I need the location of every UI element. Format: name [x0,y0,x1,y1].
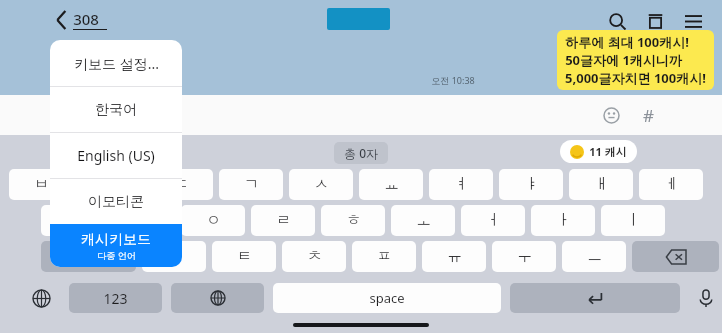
button[interactable]: 11 캐시 [560,140,637,163]
button[interactable]: 키보드 설정... [50,40,182,86]
button[interactable]: ㅂ [9,169,73,200]
button[interactable]: ㅁ [41,205,105,236]
button[interactable]: space [273,283,501,313]
staticText: 오전 10:38 [431,74,475,86]
button[interactable]: Shift [41,241,136,272]
button[interactable]: 총 0자 [334,142,388,164]
staticText: ㅈ [104,175,119,194]
button[interactable]: ㅓ [461,205,525,236]
button[interactable]: ㅈ [79,169,143,200]
staticText: 캐시키보드 [81,231,151,249]
button[interactable]: 123 [69,283,162,313]
button[interactable]: Emoji [596,100,626,130]
staticText: ㅣ [626,211,641,230]
button[interactable]: 이모티콘 [50,179,182,224]
staticText: ㅐ [594,175,609,194]
button[interactable]: ㅜ [492,241,556,272]
staticText: ㅔ [664,175,679,194]
staticText: ㅇ [206,211,221,230]
staticText: 키보드 설정... [74,54,159,73]
button[interactable]: Enter [510,283,680,313]
button[interactable]: Archive [640,6,670,36]
button[interactable]: 308 [52,6,111,33]
staticText: # [643,104,654,127]
button[interactable]: ㅋ [142,241,206,272]
button[interactable]: Menu [678,6,708,36]
staticText: 다중 언어 [97,249,136,261]
button[interactable]: ㅍ [352,241,416,272]
staticText: ㅍ [377,247,392,266]
button[interactable]: Voice input [690,280,722,316]
staticText: ㅡ [587,247,602,266]
button[interactable]: ㅏ [531,205,595,236]
button[interactable]: ㅗ [391,205,455,236]
staticText: ㅛ [384,175,399,194]
staticText: ㅌ [237,247,252,266]
button[interactable]: Hashtag [634,101,662,129]
staticText: 한국어 [95,101,137,119]
staticText: 이모티콘 [88,193,144,211]
staticText: ㄹ [276,211,291,230]
button[interactable]: English (US) [50,133,182,178]
button[interactable]: ㅕ [429,169,493,200]
staticText: ㅕ [454,175,469,194]
staticText: 50글자에 1캐시니까 [565,51,682,69]
staticText: ㅎ [346,211,361,230]
staticText: ㄴ [136,211,151,230]
staticText: ㅗ [416,211,431,230]
staticText: ㅁ [66,211,81,230]
staticText: ㄷ [174,175,189,194]
button[interactable]: ㅑ [499,169,563,200]
button[interactable]: ㅣ [601,205,665,236]
staticText: ㅜ [517,247,532,266]
button[interactable]: ㅊ [282,241,346,272]
button[interactable]: ㅠ [422,241,486,272]
button[interactable]: 한국어 [50,87,182,132]
button[interactable]: ㄹ [251,205,315,236]
button[interactable]: ㄷ [149,169,213,200]
button[interactable]: ㅌ [212,241,276,272]
staticText: ㅓ [486,211,501,230]
button[interactable]: Language [171,283,264,313]
staticText: ㅏ [556,211,571,230]
button[interactable]: Search [602,6,632,36]
button[interactable]: ㄴ [111,205,175,236]
button[interactable]: ㅇ [181,205,245,236]
staticText: ㅠ [447,247,462,266]
button[interactable]: ㅛ [359,169,423,200]
staticText: ㄱ [244,175,259,194]
button[interactable]: 하루에 최대 100캐시! [557,30,714,90]
staticText: ㅑ [524,175,539,194]
button[interactable]: ㅔ [639,169,703,200]
button[interactable]: ㅅ [289,169,353,200]
button[interactable]: ㅐ [569,169,633,200]
staticText: 308 [73,9,99,29]
staticText: ㅋ [167,247,182,266]
staticText: ㅊ [307,247,322,266]
button[interactable]: ㅡ [562,241,626,272]
button[interactable]: ㅎ [321,205,385,236]
staticText: 11 캐시 [589,144,627,159]
staticText: ㅅ [314,175,329,194]
staticText: space [369,289,405,307]
button[interactable]: Change keyboard [22,279,60,317]
staticText: 5,000글자치면 100캐시! [565,69,706,87]
button[interactable]: ㄱ [219,169,283,200]
button[interactable]: Backspace [632,241,719,272]
button[interactable]: 캐시키보드 [50,224,182,267]
staticText: 총 0자 [344,145,378,161]
staticText: 123 [103,289,128,308]
staticText: ㅂ [34,175,49,194]
staticText: English (US) [77,146,155,165]
staticText: 하루에 최대 100캐시! [565,33,689,51]
